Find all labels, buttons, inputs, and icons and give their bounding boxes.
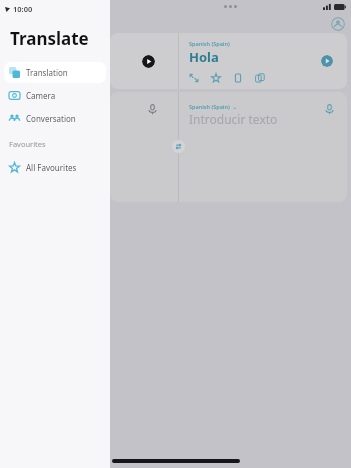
staticText: Hola (189, 48, 219, 66)
button[interactable]: Full screen (233, 73, 243, 83)
button[interactable]: Conversation (4, 108, 106, 129)
button[interactable]: All Favourites (4, 157, 106, 178)
staticText: Spanish (Spain) ⌄ (189, 103, 238, 110)
button[interactable]: Account (331, 17, 345, 31)
button[interactable]: Play source (142, 55, 155, 68)
staticText: All Favourites (26, 162, 77, 173)
button[interactable]: Swap languages (172, 140, 185, 153)
staticText: Conversation (26, 113, 76, 124)
button[interactable]: Microphone target (324, 104, 335, 115)
staticText: Camera (26, 90, 56, 101)
button[interactable]: Favourite (211, 73, 221, 83)
staticText: 10:00 (13, 4, 33, 14)
button[interactable]: Expand (189, 73, 199, 83)
staticText: Favourites (9, 139, 46, 149)
staticText: Spanish (Spain) (189, 40, 230, 47)
button[interactable]: Translation (4, 62, 106, 83)
staticText: Translation (26, 67, 68, 78)
button[interactable]: Camera (4, 85, 106, 106)
staticText: Translate (10, 27, 89, 50)
staticText: Introducir texto (189, 111, 278, 127)
button[interactable]: Microphone source (147, 104, 158, 115)
button[interactable]: Copy (255, 73, 265, 83)
button[interactable]: Play translation (321, 55, 333, 67)
